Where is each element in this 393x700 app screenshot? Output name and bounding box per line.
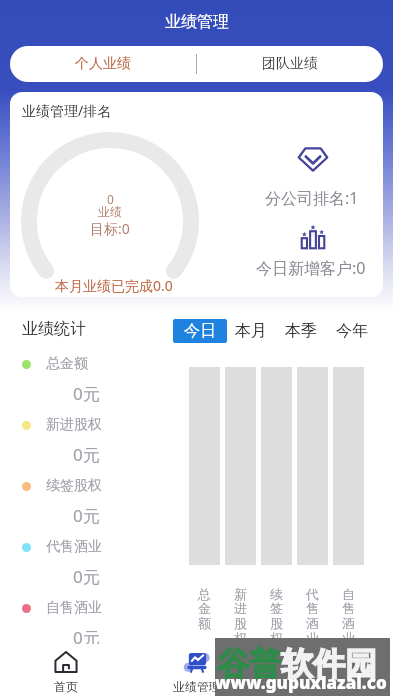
staticText: www.gupuxlazai.com [215, 671, 390, 700]
staticText: 业绩管理 [173, 679, 221, 694]
button[interactable]: 本季 [285, 319, 317, 343]
staticText: 业绩管理/排名 [22, 101, 112, 120]
staticText: 谷普 [217, 644, 281, 684]
staticText: 新进股权 [46, 416, 102, 434]
button[interactable]: 今年 [336, 319, 368, 343]
staticText: 本月 [235, 321, 267, 341]
staticText: 业绩统计 [22, 319, 86, 339]
button[interactable]: 本月 [235, 319, 267, 343]
staticText: 分公司排名:1 [265, 187, 359, 209]
button[interactable]: 我的 [262, 644, 393, 700]
staticText: 目标:0 [90, 219, 130, 238]
button[interactable]: 业绩管理 [131, 644, 262, 700]
staticText: 本季 [285, 321, 317, 341]
staticText: 代售酒业 [46, 538, 102, 556]
staticText: 我的 [316, 679, 340, 694]
staticText: 自 售 酒 业 [333, 586, 364, 647]
staticText: 本月业绩已完成0.0 [55, 276, 173, 295]
button[interactable]: 团队业绩 [197, 46, 383, 82]
staticText: 0元 [73, 626, 100, 649]
staticText: 0元 [73, 504, 100, 527]
staticText: 0元 [73, 382, 100, 405]
other: 分公司排名 [298, 147, 328, 172]
staticText: 业绩 [98, 204, 122, 219]
button[interactable]: 个人业绩 [10, 46, 196, 82]
staticText: 续签股权 [46, 477, 102, 495]
staticText: 总金额 [46, 355, 88, 373]
staticText: 今日新增客户:0 [256, 257, 366, 279]
staticText: 业绩管理 [165, 12, 229, 32]
staticText: 今日 [184, 321, 216, 341]
staticText: 0元 [73, 565, 100, 588]
staticText: 续 签 股 权 [261, 586, 292, 647]
staticText: 个人业绩 [75, 55, 131, 73]
button[interactable]: 今日 [173, 319, 227, 343]
staticText: 自售酒业 [46, 599, 102, 617]
button[interactable]: 首页 [0, 644, 131, 700]
staticText: 首页 [54, 679, 78, 694]
staticText: 总 金 额 [189, 586, 220, 632]
staticText: 新 进 股 权 [225, 586, 256, 647]
staticText: 今年 [336, 321, 368, 341]
other: 今日新增客户 [301, 225, 325, 249]
staticText: 团队业绩 [262, 55, 318, 73]
staticText: 软件园 [281, 644, 377, 684]
staticText: 代 售 酒 业 [297, 586, 328, 647]
staticText: 0元 [73, 443, 100, 466]
staticText: 0 [107, 191, 114, 207]
